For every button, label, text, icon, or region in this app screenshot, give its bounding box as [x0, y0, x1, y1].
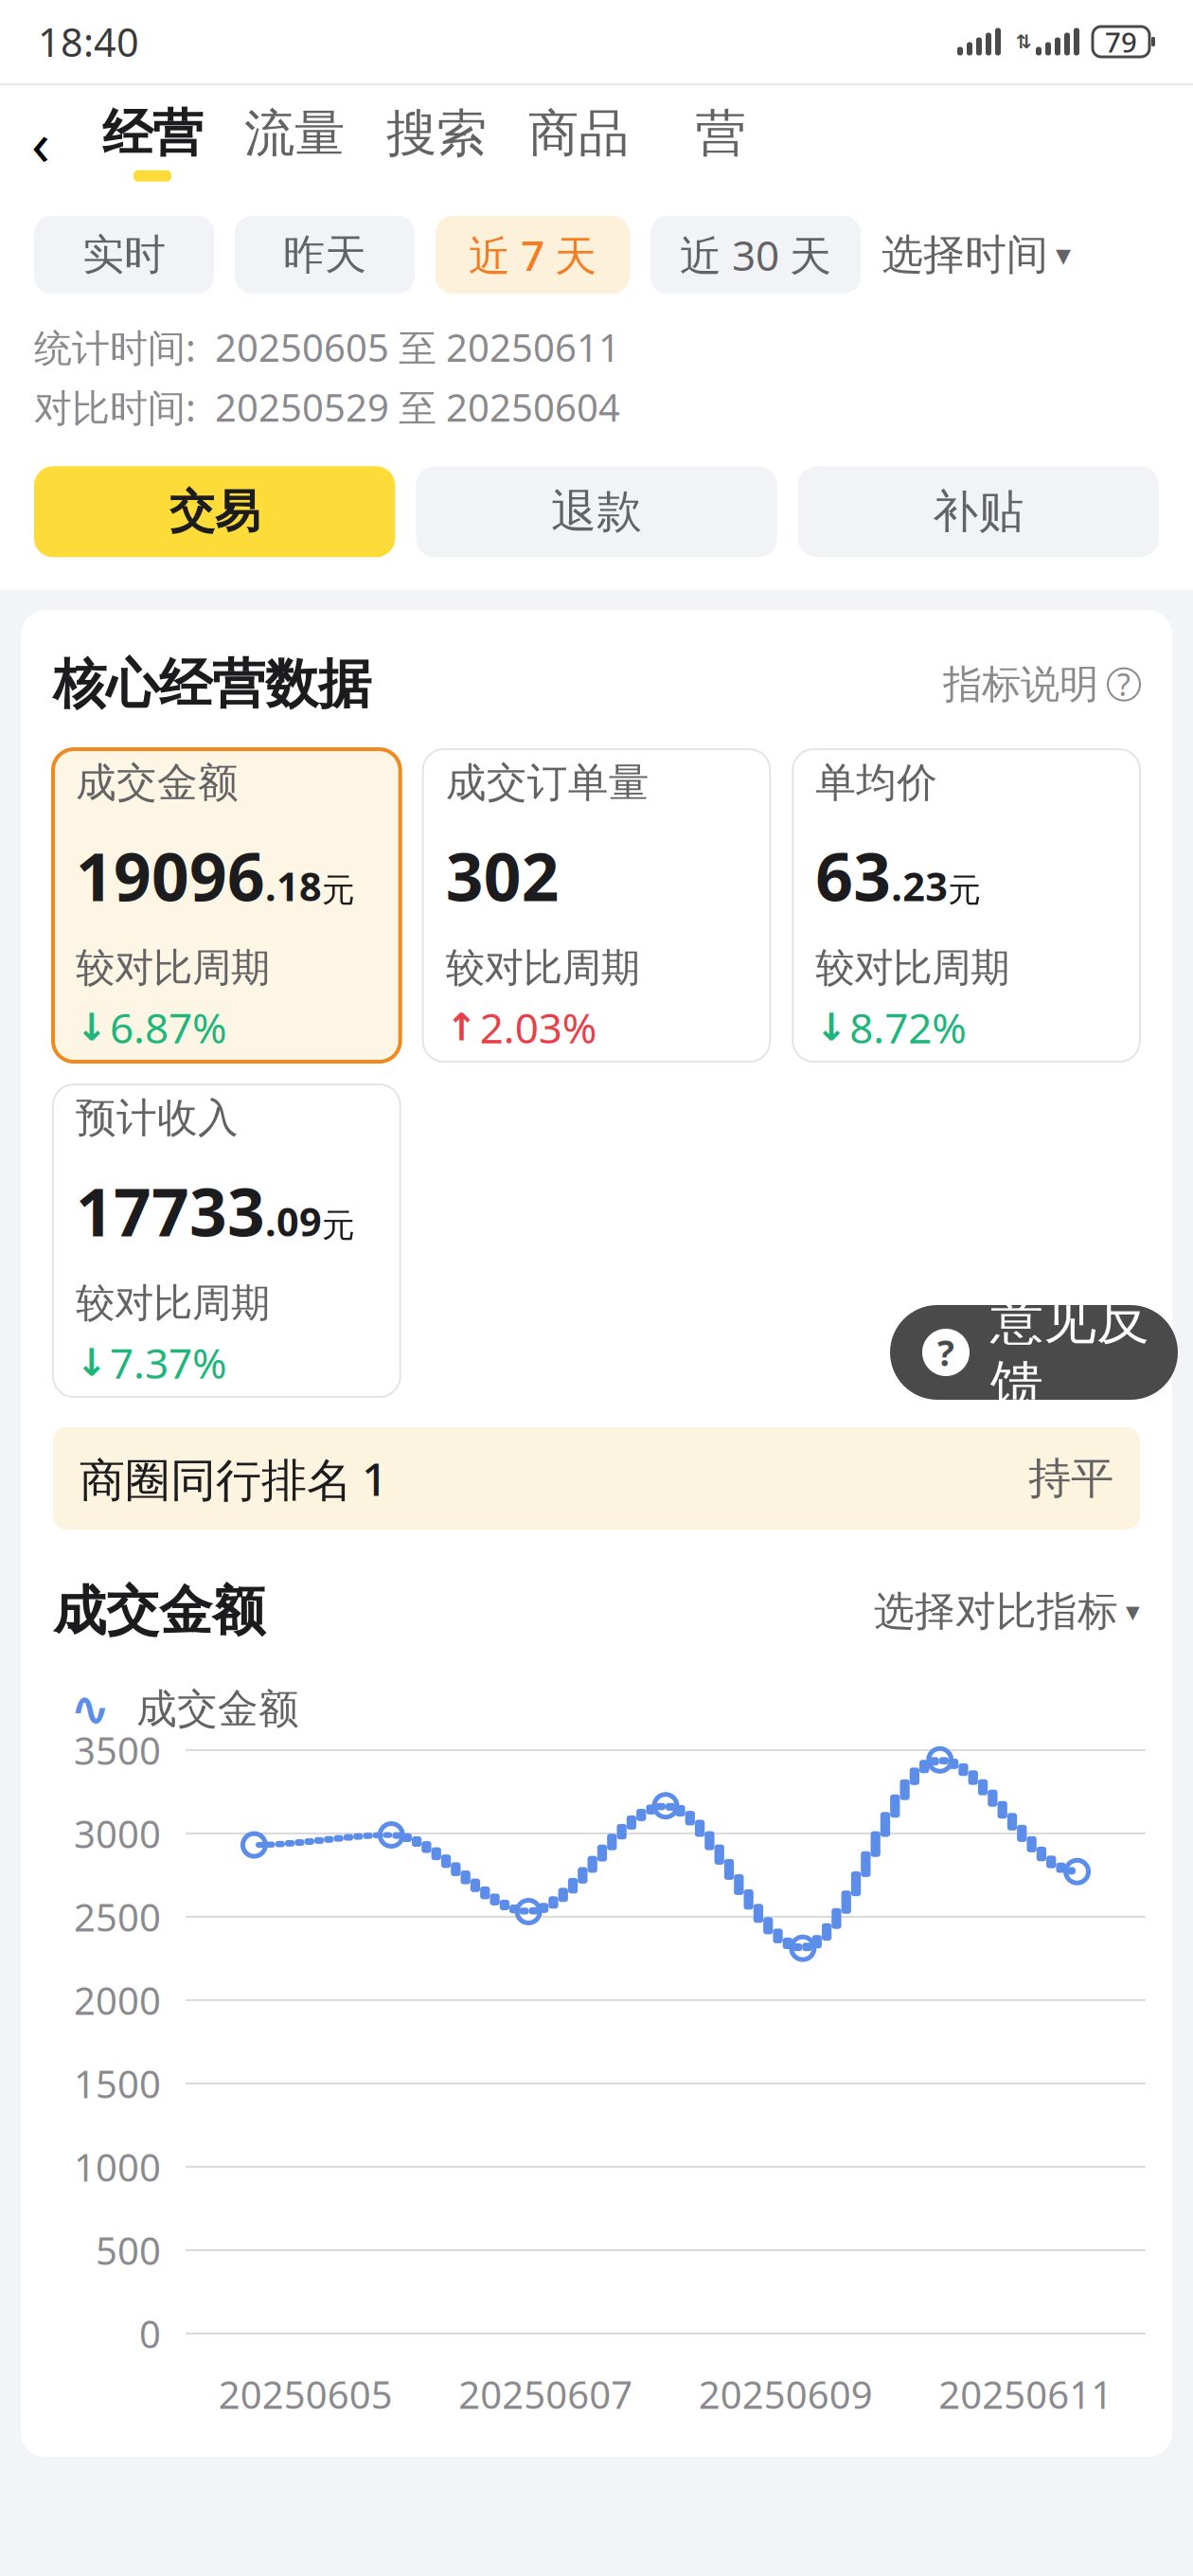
- staticText: 元: [948, 870, 981, 910]
- staticText: 19096: [76, 832, 265, 919]
- staticText: ↓: [76, 1341, 108, 1384]
- button[interactable]: 商圈同行排名: [53, 1427, 1140, 1530]
- staticText: ∿: [70, 1682, 110, 1736]
- staticText: .23: [891, 860, 948, 912]
- staticText: 成交订单量: [446, 758, 649, 807]
- staticText: ?: [1117, 664, 1131, 705]
- button[interactable]: 近 30 天: [650, 216, 861, 294]
- staticText: .09: [265, 1195, 322, 1247]
- button[interactable]: 经营: [81, 90, 223, 194]
- staticText: 选择时间: [881, 229, 1048, 280]
- staticText: 昨天: [283, 229, 366, 280]
- staticText: 成交金额: [76, 758, 239, 807]
- staticText: 18:40: [38, 16, 139, 68]
- staticText: 63: [816, 832, 891, 919]
- staticText: 302: [446, 832, 559, 919]
- staticText: 500: [96, 2225, 161, 2275]
- staticText: 成交金额: [53, 1579, 265, 1644]
- button[interactable]: 选择对比指标: [874, 1587, 1140, 1636]
- staticText: 营: [695, 102, 746, 165]
- staticText: 79: [1105, 23, 1137, 60]
- staticText: 统计时间: 20250605 至 20250611: [34, 322, 620, 372]
- button[interactable]: 流量: [223, 90, 365, 194]
- staticText: 3000: [74, 1808, 161, 1859]
- staticText: 20250605: [219, 2369, 393, 2419]
- staticText: 元: [322, 870, 355, 910]
- staticText: 20250611: [938, 2369, 1113, 2419]
- staticText: 20250609: [699, 2369, 873, 2419]
- staticText: 成交金额: [136, 1684, 299, 1734]
- staticText: 较对比周期: [76, 944, 270, 992]
- staticText: 17733: [76, 1167, 265, 1255]
- staticText: ▾: [1126, 1596, 1140, 1627]
- staticText: 8.72%: [850, 1000, 967, 1055]
- button[interactable]: 成交订单量: [423, 749, 770, 1062]
- staticText: 2000: [74, 1975, 161, 2025]
- staticText: 意见反馈: [990, 1287, 1149, 1418]
- staticText: 20250607: [458, 2369, 633, 2419]
- button[interactable]: 补贴: [798, 466, 1159, 557]
- staticText: 7.37%: [110, 1335, 227, 1390]
- staticText: 较对比周期: [446, 944, 640, 992]
- staticText: 持平: [1028, 1452, 1113, 1505]
- staticText: 1000: [74, 2142, 161, 2192]
- staticText: 单均价: [816, 758, 938, 807]
- staticText: 近 7 天: [469, 227, 596, 282]
- staticText: 较对比周期: [76, 1279, 270, 1327]
- button[interactable]: 实时: [34, 216, 214, 294]
- staticText: .18: [265, 860, 322, 912]
- staticText: 预计收入: [76, 1093, 239, 1143]
- staticText: 补贴: [933, 484, 1024, 540]
- staticText: 1500: [74, 2058, 161, 2109]
- button[interactable]: 成交金额: [53, 749, 400, 1062]
- staticText: 退款: [551, 484, 642, 540]
- button[interactable]: 营: [650, 90, 792, 194]
- staticText: ↑: [446, 1006, 478, 1049]
- staticText: 6.87%: [110, 1000, 227, 1055]
- staticText: 近 30 天: [680, 227, 831, 282]
- button[interactable]: 返回: [0, 97, 81, 188]
- button[interactable]: 商品: [507, 90, 650, 194]
- button[interactable]: 退款: [416, 466, 777, 557]
- staticText: 流量: [244, 102, 345, 165]
- staticText: 实时: [82, 229, 166, 280]
- staticText: 指标说明: [943, 660, 1098, 708]
- staticText: ?: [937, 1329, 954, 1376]
- button[interactable]: 选择时间: [881, 212, 1071, 297]
- button[interactable]: 指标说明: [943, 660, 1140, 708]
- staticText: ↓: [76, 1006, 108, 1049]
- staticText: ▾: [1056, 238, 1071, 272]
- button[interactable]: 单均价: [793, 749, 1140, 1062]
- staticText: 选择对比指标: [874, 1587, 1118, 1636]
- staticText: 对比时间: 20250529 至 20250604: [34, 382, 620, 432]
- staticText: 较对比周期: [816, 944, 1010, 992]
- staticText: 3500: [74, 1725, 161, 1775]
- button[interactable]: 预计收入: [53, 1084, 400, 1397]
- button[interactable]: 昨天: [235, 216, 415, 294]
- staticText: 元: [322, 1205, 355, 1246]
- staticText: 0: [139, 2308, 161, 2359]
- staticText: 商圈同行排名: [80, 1453, 352, 1509]
- staticText: ↓: [816, 1006, 848, 1049]
- button[interactable]: 交易: [34, 466, 395, 557]
- button[interactable]: ?: [890, 1305, 1178, 1400]
- button[interactable]: 近 7 天: [436, 216, 630, 294]
- staticText: 2500: [74, 1892, 161, 1942]
- button[interactable]: 搜索: [365, 90, 507, 194]
- staticText: 经营: [102, 102, 203, 165]
- staticText: 搜索: [386, 102, 487, 165]
- staticText: 商品: [528, 102, 629, 165]
- staticText: ⇅: [1016, 31, 1032, 52]
- staticText: 核心经营数据: [53, 652, 371, 717]
- staticText: 2.03%: [480, 1000, 597, 1055]
- staticText: 1: [362, 1448, 387, 1508]
- staticText: 交易: [169, 484, 260, 540]
- staticText: ‹: [31, 102, 50, 182]
